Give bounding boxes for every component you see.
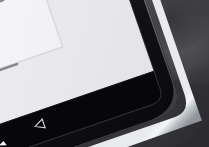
button[interactable]: Phone showing messaging app <box>0 0 209 147</box>
